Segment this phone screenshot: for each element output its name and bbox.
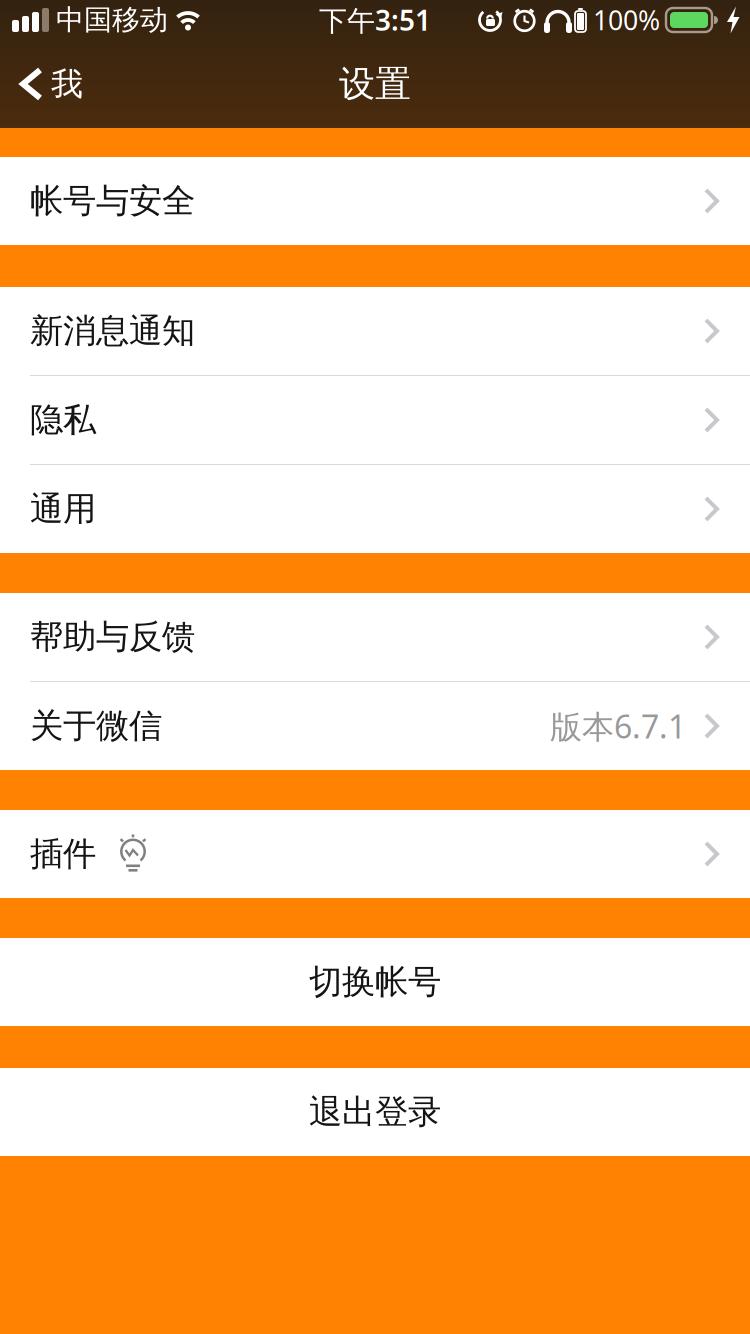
staticText: 100% (593, 2, 660, 38)
button[interactable]: 通用 (0, 465, 750, 553)
button[interactable]: 帐号与安全 (0, 157, 750, 245)
staticText: 退出登录 (309, 1091, 441, 1132)
button[interactable]: 新消息通知 (0, 287, 750, 375)
staticText: 切换帐号 (309, 961, 441, 1002)
staticText: 关于微信 (30, 705, 162, 746)
staticText: 设置 (339, 62, 411, 106)
staticText: 中国移动 (56, 3, 168, 37)
staticText: 插件 (30, 833, 96, 874)
button[interactable]: 退出登录 (0, 1068, 750, 1156)
staticText: 隐私 (30, 399, 96, 440)
staticText: 帮助与反馈 (30, 616, 195, 657)
staticText: 新消息通知 (30, 310, 195, 351)
staticText: 帐号与安全 (30, 180, 195, 221)
button[interactable]: 帮助与反馈 (0, 593, 750, 681)
staticText: 版本6.7.1 (550, 705, 686, 747)
button[interactable]: 返回 我 (0, 64, 83, 104)
staticText: 通用 (30, 488, 96, 529)
button[interactable]: 隐私 (0, 376, 750, 464)
button[interactable]: 切换帐号 (0, 938, 750, 1026)
staticText: 下午3:51 (319, 1, 431, 39)
staticText: 我 (51, 64, 83, 104)
button[interactable]: 关于微信 (0, 682, 750, 770)
button[interactable]: 插件 (0, 810, 750, 898)
